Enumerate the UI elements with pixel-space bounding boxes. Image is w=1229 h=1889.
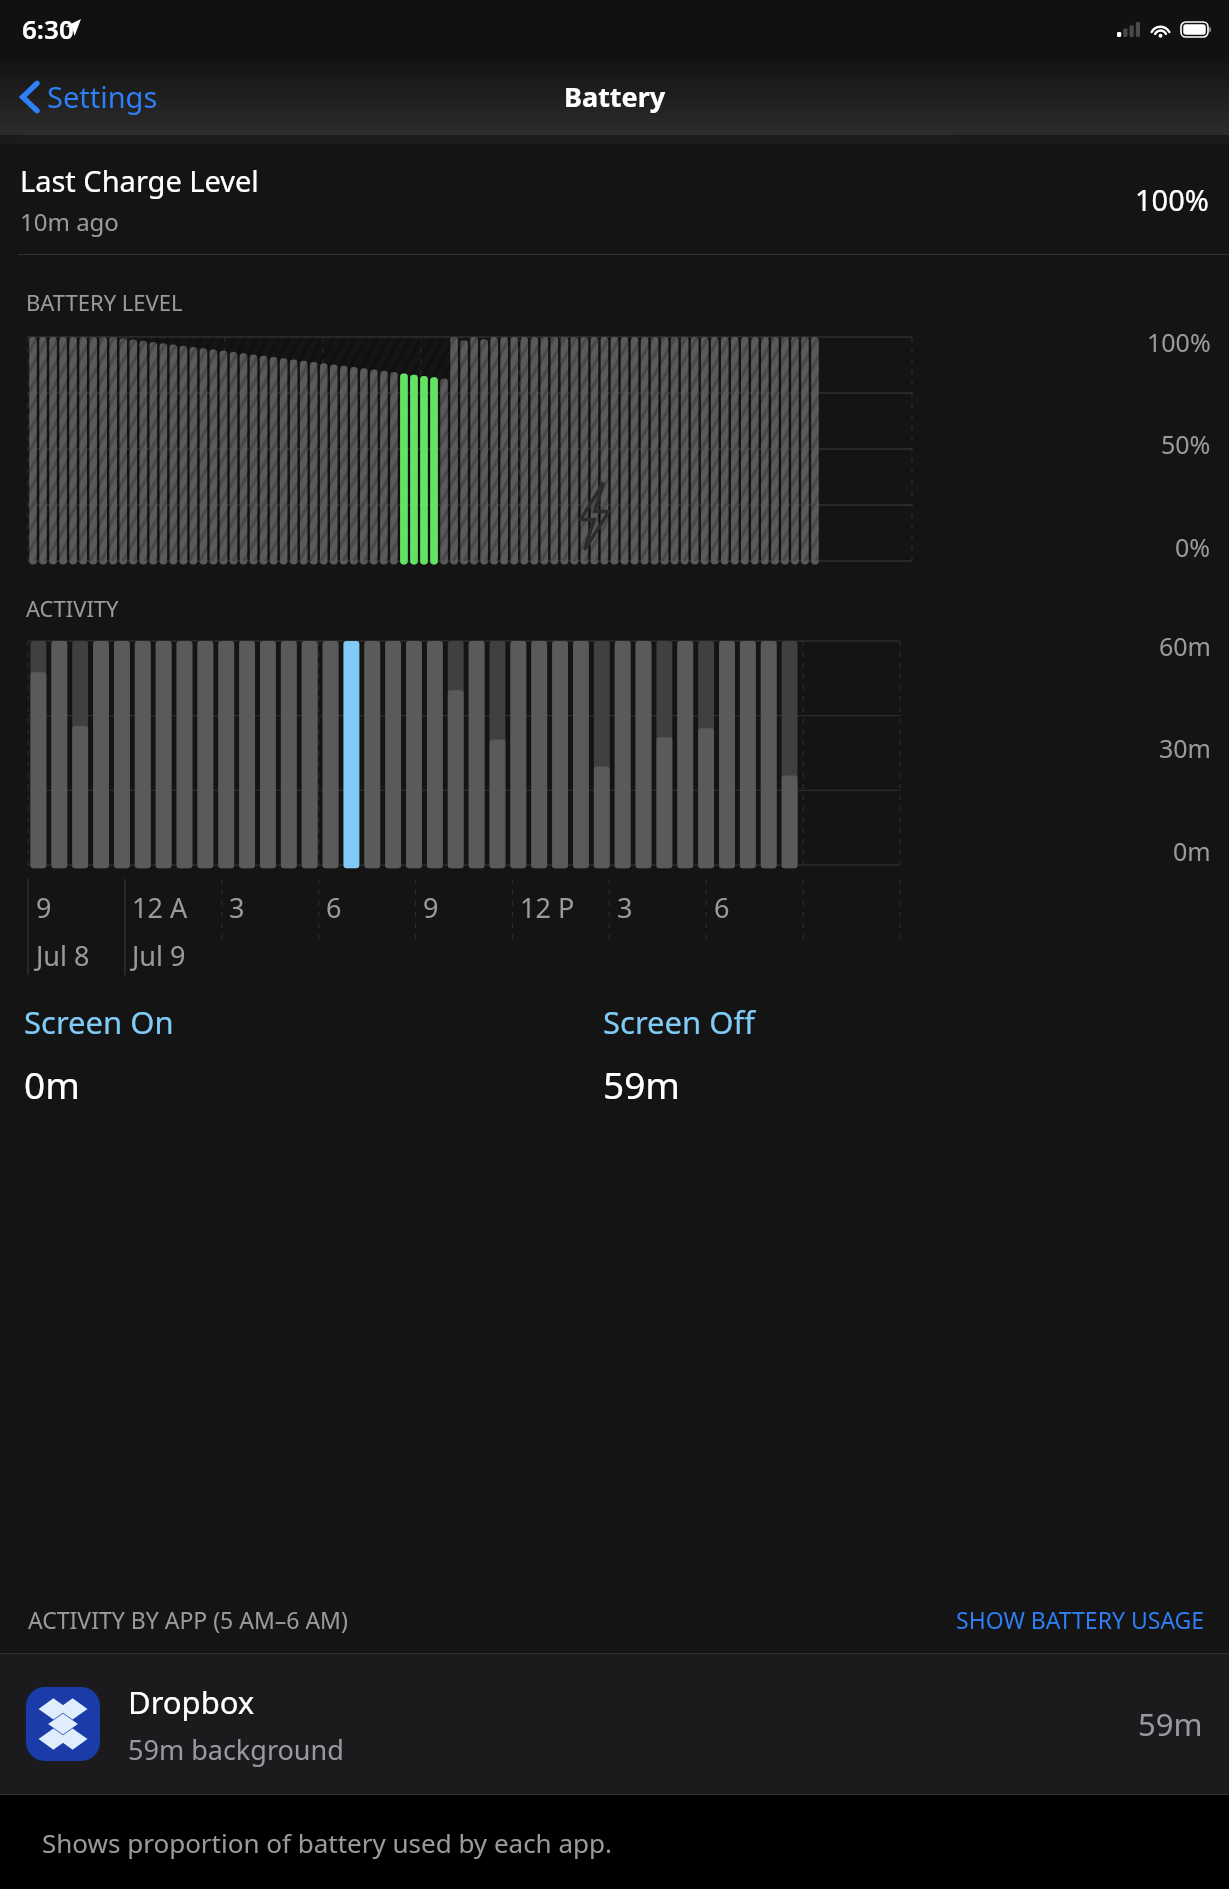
staticText: 59m background: [128, 1731, 344, 1768]
staticText: Battery: [564, 78, 666, 115]
staticText: Jul 9: [132, 937, 186, 974]
staticText: 59m: [1138, 1703, 1203, 1745]
staticText: ACTIVITY BY APP (5 AM–6 AM): [28, 1604, 348, 1635]
staticText: 6: [714, 889, 730, 926]
staticText: SHOW BATTERY USAGE: [956, 1604, 1205, 1635]
staticText: BATTERY LEVEL: [26, 287, 183, 317]
staticText: 100%: [1135, 180, 1209, 219]
staticText: 12 A: [132, 889, 188, 926]
button[interactable]: SHOW BATTERY USAGE: [956, 1604, 1205, 1635]
staticText: 9: [36, 889, 52, 926]
staticText: Dropbox: [128, 1681, 255, 1723]
staticText: 30m: [1159, 731, 1211, 765]
button[interactable]: Screen On: [24, 1001, 603, 1109]
staticText: 3: [229, 889, 245, 926]
staticText: 9: [423, 889, 439, 926]
staticText: 0m: [1173, 834, 1211, 868]
button[interactable]: Dropbox: [0, 1654, 1229, 1794]
button[interactable]: Settings: [12, 69, 166, 124]
staticText: Jul 8: [36, 937, 90, 974]
staticText: 60m: [1159, 629, 1211, 663]
staticText: ACTIVITY: [26, 593, 119, 623]
staticText: Settings: [47, 77, 158, 116]
staticText: 6:30: [22, 11, 74, 46]
staticText: 0m: [24, 1059, 80, 1109]
staticText: Last Charge Level: [20, 161, 259, 200]
staticText: 6: [326, 889, 342, 926]
staticText: 0%: [1175, 530, 1211, 564]
staticText: 59m: [603, 1059, 680, 1109]
staticText: 12 P: [520, 889, 575, 926]
staticText: 100%: [1147, 325, 1211, 359]
staticText: 10m ago: [20, 205, 119, 238]
button[interactable]: Screen Off: [603, 1001, 1229, 1109]
other: Location: [64, 19, 81, 36]
staticText: Screen On: [24, 1001, 174, 1043]
staticText: 50%: [1161, 427, 1211, 461]
button[interactable]: Last Charge Level: [0, 144, 1229, 254]
staticText: 3: [617, 889, 633, 926]
staticText: Screen Off: [603, 1001, 755, 1043]
staticText: Shows proportion of battery used by each…: [42, 1825, 612, 1860]
